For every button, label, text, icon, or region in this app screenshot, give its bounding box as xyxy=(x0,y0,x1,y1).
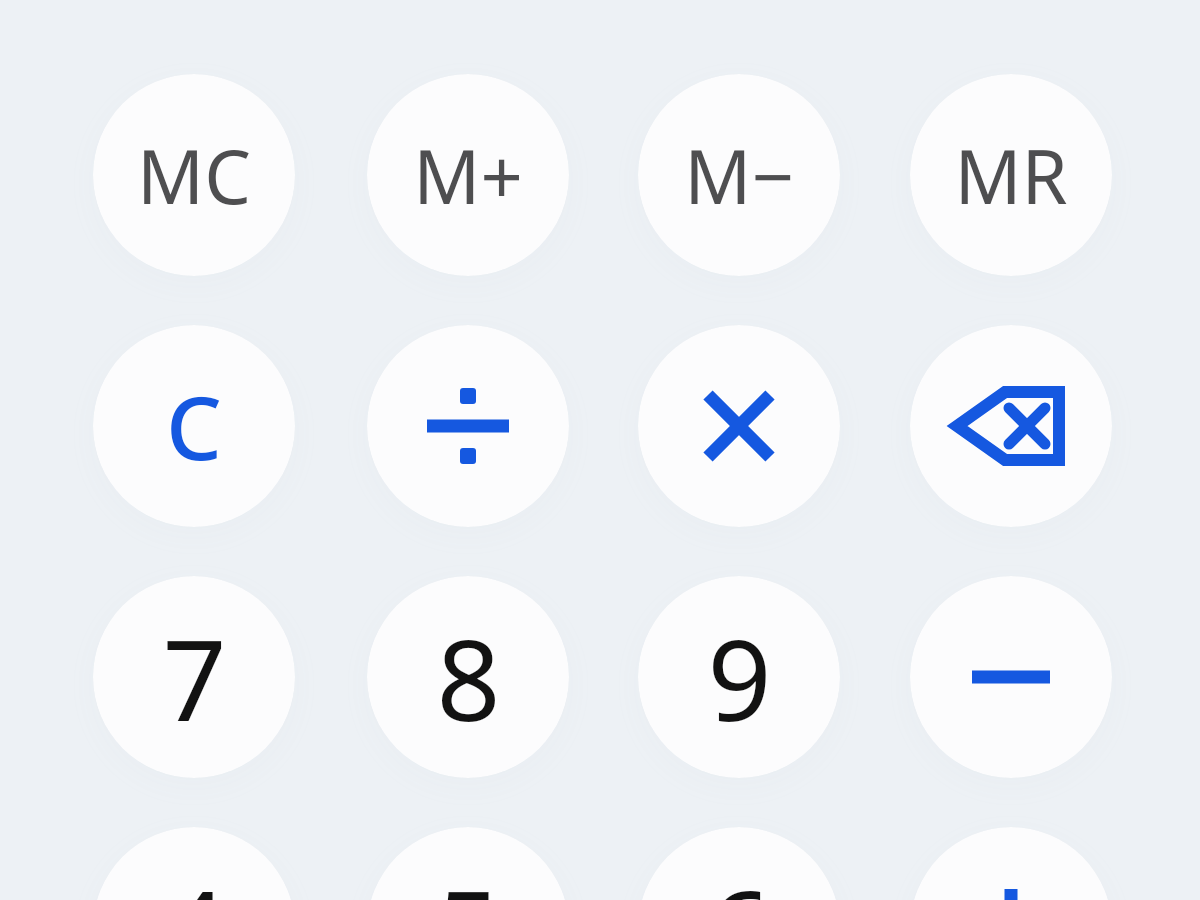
staticText: 7 xyxy=(162,601,227,754)
button[interactable]: 9 xyxy=(638,576,840,778)
staticText: 4 xyxy=(162,852,227,900)
staticText: 8 xyxy=(436,601,501,754)
staticText: C xyxy=(166,366,222,486)
button[interactable]: 8 xyxy=(367,576,569,778)
staticText: MC xyxy=(137,125,251,226)
staticText: 9 xyxy=(707,601,772,754)
staticText: 5 xyxy=(436,852,501,900)
button[interactable]: MC xyxy=(93,74,295,276)
button[interactable]: 4 xyxy=(93,827,295,900)
button[interactable]: M+ xyxy=(367,74,569,276)
button[interactable]: 7 xyxy=(93,576,295,778)
button[interactable]: 5 xyxy=(367,827,569,900)
button[interactable]: Minus xyxy=(910,576,1112,778)
button[interactable]: C xyxy=(93,325,295,527)
button[interactable]: Plus xyxy=(910,827,1112,900)
button[interactable]: Multiply xyxy=(638,325,840,527)
staticText: MR xyxy=(954,125,1068,226)
staticText: M+ xyxy=(413,125,523,226)
button[interactable]: MR xyxy=(910,74,1112,276)
button[interactable]: M− xyxy=(638,74,840,276)
staticText: 6 xyxy=(707,852,772,900)
button[interactable]: Backspace xyxy=(910,325,1112,527)
staticText: M− xyxy=(684,125,794,226)
button[interactable]: Divide xyxy=(367,325,569,527)
button[interactable]: 6 xyxy=(638,827,840,900)
